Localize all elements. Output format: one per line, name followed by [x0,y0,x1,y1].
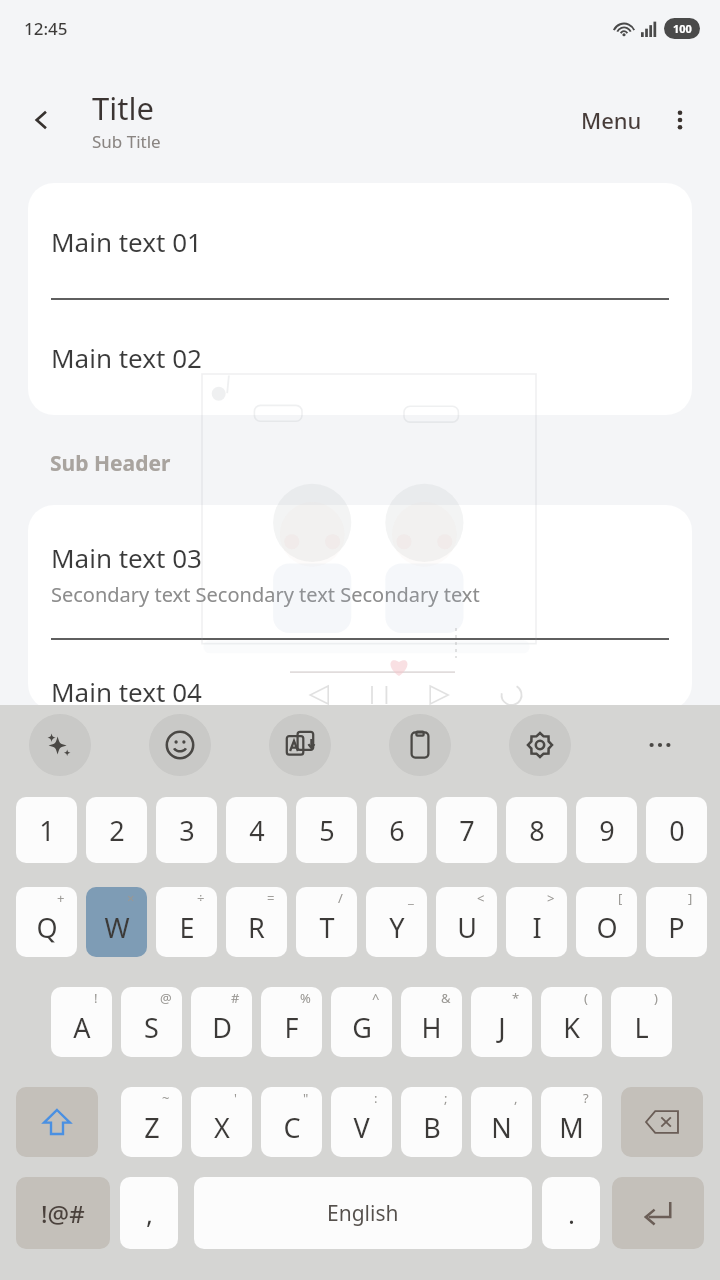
staticText: W [104,909,130,946]
staticText: 12:45 [24,17,68,40]
staticText: N [491,1109,512,1146]
button[interactable]: # [191,987,252,1057]
button[interactable]: 6 [366,797,427,863]
staticText: . [568,1196,575,1231]
button[interactable]: ; [401,1087,462,1157]
button[interactable]: ( [541,987,602,1057]
staticText: O [596,909,618,946]
button[interactable]: More options [652,92,708,148]
staticText: A [73,1009,91,1046]
button[interactable]: > [506,887,567,957]
staticText: E [179,909,195,946]
button[interactable]: Back [16,94,68,146]
staticText: [ [618,889,623,907]
staticText: X [214,1109,230,1146]
button[interactable]: ! [51,987,112,1057]
button[interactable]: Clipboard [389,714,451,776]
button[interactable]: More keyboard options [629,714,691,776]
button[interactable]: 3 [156,797,217,863]
staticText: ! [94,989,98,1007]
button[interactable]: Emoji [149,714,211,776]
button[interactable]: & [401,987,462,1057]
staticText: , [514,1089,518,1107]
button[interactable]: Shift [16,1087,98,1157]
button[interactable]: Enter [612,1177,704,1249]
staticText: _ [408,889,414,907]
button[interactable]: Main text 01 [28,183,692,299]
button[interactable]: , [471,1087,532,1157]
staticText: Y [389,909,405,946]
staticText: K [563,1009,580,1046]
staticText: 7 [459,812,475,849]
button[interactable]: Main text 02 [28,300,692,415]
staticText: 6 [389,812,405,849]
button[interactable]: ) [611,987,672,1057]
staticText: Secondary text Secondary text Secondary … [51,581,480,608]
staticText: " [303,1089,309,1107]
staticText: # [231,989,240,1007]
staticText: English [327,1199,399,1228]
staticText: D [212,1009,232,1046]
button[interactable]: Main text 04 [28,640,692,710]
staticText: 1 [39,812,55,849]
staticText: 3 [179,812,195,849]
staticText: ( [584,989,588,1007]
button[interactable]: 5 [296,797,357,863]
button[interactable]: ? [541,1087,602,1157]
staticText: @ [160,989,172,1007]
staticText: Z [144,1109,160,1146]
button[interactable]: < [436,887,497,957]
staticText: R [248,909,265,946]
button[interactable]: + [16,887,77,957]
button[interactable]: = [226,887,287,957]
button[interactable]: ^ [331,987,392,1057]
button[interactable]: 2 [86,797,147,863]
staticText: ] [688,889,693,907]
staticText: < [477,889,485,907]
button[interactable]: . [542,1177,600,1249]
staticText: = [267,889,275,907]
button[interactable]: !@# [16,1177,110,1249]
button[interactable]: × [86,887,147,957]
button[interactable]: : [331,1087,392,1157]
button[interactable]: Keyboard settings [509,714,571,776]
button[interactable]: Backspace [621,1087,703,1157]
button[interactable]: * [471,987,532,1057]
staticText: T [319,909,335,946]
staticText: 2 [109,812,125,849]
button[interactable]: " [261,1087,322,1157]
staticText: ) [654,989,658,1007]
button[interactable]: , [120,1177,178,1249]
button[interactable]: 1 [16,797,77,863]
button[interactable]: _ [366,887,427,957]
staticText: J [498,1009,506,1046]
button[interactable]: Main text 03 [28,505,692,637]
button[interactable]: Menu [571,93,652,147]
button[interactable]: AI suggestions [29,714,91,776]
button[interactable]: % [261,987,322,1057]
button[interactable]: English [194,1177,532,1249]
button[interactable]: ~ [121,1087,182,1157]
staticText: % [300,989,311,1007]
staticText: !@# [41,1197,85,1230]
button[interactable]: ÷ [156,887,217,957]
button[interactable]: 7 [436,797,497,863]
button[interactable]: ] [646,887,707,957]
button[interactable]: ' [191,1087,252,1157]
button[interactable]: 4 [226,797,287,863]
staticText: / [338,889,343,907]
button[interactable]: @ [121,987,182,1057]
staticText: ' [234,1089,237,1107]
button[interactable]: / [296,887,357,957]
button[interactable]: 9 [576,797,637,863]
staticText: Sub Title [92,130,161,153]
staticText: Sub Header [50,449,171,478]
button[interactable]: 8 [506,797,567,863]
staticText: * [512,989,520,1007]
button[interactable]: [ [576,887,637,957]
staticText: Q [36,909,58,946]
button[interactable]: Translate [269,714,331,776]
button[interactable]: 0 [646,797,707,863]
staticText: ~ [162,1089,170,1107]
staticText: M [559,1109,584,1146]
